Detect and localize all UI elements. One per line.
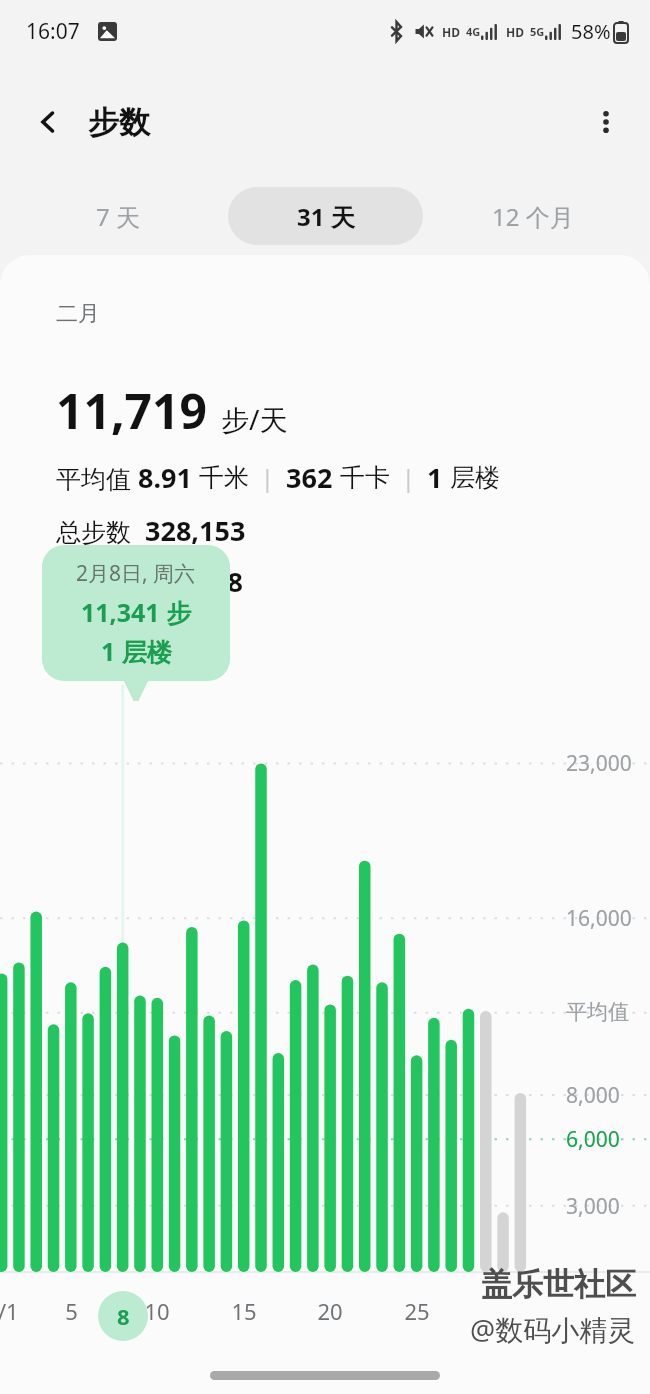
button[interactable]: 7 天	[20, 187, 216, 245]
staticText: HD	[506, 24, 524, 40]
staticText: 8.91	[138, 459, 199, 496]
staticText: 16,000	[566, 904, 632, 933]
staticText: 盖乐世社区	[481, 1265, 636, 1304]
staticText: 3,000	[566, 1192, 620, 1221]
staticText: 11,719	[56, 378, 207, 443]
staticText: 7 天	[96, 200, 140, 233]
staticText: 328,153	[145, 512, 246, 549]
button[interactable]: Back	[24, 98, 72, 146]
staticText: 12 个月	[492, 200, 574, 233]
staticText: 15	[231, 1296, 257, 1326]
staticText: 二月	[56, 300, 100, 328]
staticText: 362	[286, 459, 340, 496]
staticText: 31 天	[297, 200, 355, 233]
button[interactable]: 8	[98, 1291, 148, 1341]
staticText: 6,000	[566, 1125, 620, 1154]
staticText: 25	[404, 1296, 430, 1326]
staticText: 58%	[571, 18, 611, 45]
staticText: 千卡	[340, 462, 390, 493]
staticText: 23,000	[566, 749, 632, 778]
staticText: 5	[65, 1296, 78, 1326]
staticText: 总步数	[56, 514, 145, 548]
staticText: 8,000	[566, 1081, 620, 1110]
button[interactable]: More options	[582, 98, 630, 146]
staticText: 2/1	[0, 1296, 19, 1326]
staticText: @数码小精灵	[470, 1310, 636, 1348]
staticText: 层楼	[450, 462, 500, 493]
staticText: 28/28	[170, 563, 243, 600]
staticText: 16:07	[26, 17, 80, 46]
staticText: |	[390, 462, 427, 493]
staticText: 1	[427, 459, 450, 496]
staticText: 20	[317, 1296, 343, 1326]
staticText: 5G	[530, 24, 545, 39]
staticText: 1 层楼	[101, 634, 172, 668]
staticText: 8	[117, 1301, 130, 1331]
staticText: HD	[442, 24, 460, 40]
staticText: 平均值	[56, 461, 138, 495]
button[interactable]: 12 个月	[435, 187, 630, 245]
staticText: 11,341 步	[81, 595, 192, 629]
staticText: 4G	[466, 24, 481, 39]
staticText: 2月8日, 周六	[76, 559, 196, 588]
staticText: 步数	[88, 103, 150, 142]
button[interactable]: 31 天	[228, 187, 423, 245]
staticText: 千米	[199, 462, 249, 493]
staticText: 平均值	[566, 999, 629, 1025]
staticText: |	[249, 462, 286, 493]
staticText: 步/天	[221, 400, 288, 438]
staticText: 目标达成	[56, 565, 170, 599]
staticText: 10	[144, 1296, 170, 1326]
